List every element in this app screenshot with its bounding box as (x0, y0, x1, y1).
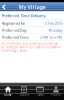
button[interactable]: Profile (48, 83, 64, 100)
staticText: Orders (19, 93, 28, 97)
staticText: Preferred Time (2, 34, 29, 40)
button[interactable]: Home (0, 83, 16, 100)
staticText: Registered for (2, 21, 26, 26)
button[interactable]: Registered for (0, 20, 64, 27)
staticText: The Preferred Time & Delivery details ca… (1, 42, 61, 52)
staticText: 2 Feb 2015 (44, 21, 62, 26)
button[interactable]: Preferred Day (0, 27, 64, 33)
staticText: Home (4, 93, 12, 97)
staticText: Profile (51, 93, 61, 97)
button[interactable]: Back (0, 3, 12, 11)
staticText: Monday (48, 28, 62, 33)
button[interactable]: Cards (32, 83, 48, 100)
staticText: Preferred Day (2, 28, 27, 33)
button[interactable]: Orders (16, 83, 32, 100)
staticText: Preferred Time Delivery (2, 13, 46, 18)
staticText: My Village (18, 3, 45, 11)
staticText: Cards (36, 93, 43, 97)
staticText: 2 PM to 5 PM (39, 34, 62, 40)
button[interactable]: Preferred Time (0, 34, 64, 40)
